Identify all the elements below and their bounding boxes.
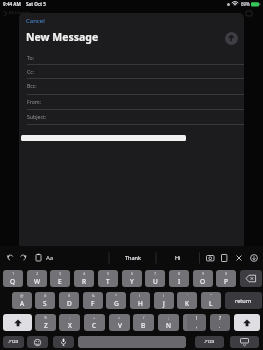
staticText: ? <box>219 315 221 321</box>
button[interactable]: ' <box>177 292 197 309</box>
button[interactable]: return <box>225 292 262 309</box>
staticText: O <box>200 277 206 286</box>
button[interactable] <box>53 336 74 348</box>
button[interactable]: 8 <box>169 270 189 287</box>
button[interactable]: # <box>35 292 55 309</box>
staticText: U <box>153 277 158 286</box>
staticText: .?123 <box>204 339 215 345</box>
staticText: J <box>163 299 165 308</box>
staticText: M <box>191 321 197 330</box>
button[interactable]: ; <box>158 314 179 331</box>
button[interactable]: " <box>201 292 221 309</box>
staticText: To: <box>27 54 35 61</box>
button[interactable]: .?123 <box>195 336 224 348</box>
staticText: return <box>235 297 252 304</box>
staticText: Q <box>10 277 16 286</box>
button[interactable]: .?123 <box>3 336 24 348</box>
staticText: ! <box>196 315 198 321</box>
button[interactable]: $ <box>59 292 79 309</box>
staticText: R <box>82 277 87 286</box>
staticText: L <box>209 299 213 308</box>
button[interactable]: ! <box>187 314 206 331</box>
staticText: Aa <box>46 254 54 262</box>
staticText: 2 <box>36 271 39 276</box>
staticText: , <box>196 323 198 329</box>
staticText: 3 <box>59 271 62 276</box>
staticText: X <box>68 321 72 330</box>
staticText: ; <box>168 315 170 320</box>
button[interactable]: 1 <box>3 270 23 287</box>
button[interactable]: & <box>83 292 103 309</box>
staticText: C <box>92 321 97 330</box>
button[interactable] <box>240 270 262 287</box>
staticText: I <box>178 277 181 286</box>
button[interactable] <box>78 336 186 348</box>
staticText: ' <box>187 293 188 298</box>
staticText: Y <box>130 277 134 286</box>
button[interactable]: Cc: <box>19 64 244 78</box>
staticText: .?123 <box>8 339 19 345</box>
staticText: E <box>58 277 62 286</box>
button[interactable] <box>230 336 259 348</box>
staticText: % <box>44 315 48 320</box>
staticText: = <box>118 315 121 320</box>
staticText: T <box>106 277 110 286</box>
staticText: 5 <box>107 271 110 276</box>
staticText: 6 <box>131 271 134 276</box>
button[interactable] <box>234 314 260 331</box>
staticText: 9:44 AM <box>3 1 21 7</box>
button[interactable]: Hi <box>163 251 193 264</box>
staticText: * <box>115 293 118 298</box>
button[interactable]: ) <box>154 292 174 309</box>
button[interactable]: 2 <box>27 270 47 287</box>
staticText: " <box>210 293 212 298</box>
staticText: & <box>92 293 95 298</box>
button[interactable]: Thank <box>115 251 151 264</box>
button[interactable]: 4 <box>74 270 94 287</box>
staticText: F <box>91 299 95 308</box>
staticText: Subject: <box>27 113 47 120</box>
button[interactable]: = <box>109 314 130 331</box>
button[interactable]: 0 <box>216 270 236 287</box>
button[interactable]: 5 <box>98 270 118 287</box>
staticText: 7 <box>154 271 157 276</box>
button[interactable]: @ <box>12 292 32 309</box>
button[interactable]: 6 <box>122 270 142 287</box>
button[interactable]: Bcc: <box>19 78 244 93</box>
button[interactable]: 7 <box>145 270 165 287</box>
staticText: V <box>118 321 122 330</box>
staticText: K <box>185 299 190 308</box>
button[interactable]: + <box>84 314 105 331</box>
staticText: D <box>67 299 72 308</box>
staticText: 9 <box>202 271 205 276</box>
button[interactable] <box>27 336 48 348</box>
staticText: S <box>43 299 47 308</box>
button[interactable]: Subject: <box>19 109 244 124</box>
button[interactable]: To: <box>19 49 244 65</box>
button[interactable]: : <box>183 314 204 331</box>
button[interactable]: / <box>133 314 154 331</box>
staticText: New Message <box>26 30 99 44</box>
button[interactable]: - <box>59 314 80 331</box>
button[interactable] <box>225 32 238 45</box>
button[interactable]: ? <box>210 314 230 331</box>
staticText: 69% <box>241 1 250 7</box>
staticText: 4 <box>83 271 86 276</box>
button[interactable]: From: <box>19 94 244 109</box>
button[interactable] <box>3 314 32 331</box>
button[interactable]: ( <box>130 292 150 309</box>
button[interactable]: % <box>35 314 56 331</box>
button[interactable]: * <box>106 292 126 309</box>
staticText: - <box>69 315 71 320</box>
staticText: N <box>166 321 171 330</box>
button[interactable]: 3 <box>50 270 70 287</box>
staticText: $ <box>68 293 71 298</box>
staticText: From: <box>27 98 42 105</box>
staticText: 0 <box>225 271 228 276</box>
staticText: H <box>138 299 143 308</box>
button[interactable]: Cancel <box>21 15 51 25</box>
staticText: Bcc: <box>27 82 37 89</box>
button[interactable]: 9 <box>193 270 213 287</box>
staticText: Thank <box>125 254 141 261</box>
